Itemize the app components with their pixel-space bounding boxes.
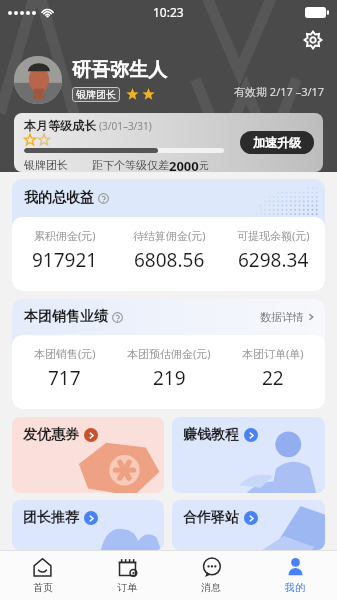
button[interactable]: 加速升级 [240,131,314,154]
button[interactable]: 发优惠券 [12,417,164,493]
button[interactable]: Profile avatar [14,56,62,104]
staticText: 717 [48,365,81,391]
staticText: 6808.56 [134,247,205,273]
staticText: 本团销售业绩 [24,308,108,326]
staticText: 加速升级 [253,135,301,150]
button[interactable]: 累积佣金(元) [12,228,117,273]
staticText: 本团订单(单) [242,346,304,361]
staticText: 我的 [285,581,305,594]
staticText: 首页 [33,581,53,594]
staticText: 可提现余额(元) [237,228,310,243]
button[interactable]: 首页 [0,551,85,600]
staticText: 消息 [201,581,221,594]
button[interactable]: 赚钱教程 [172,417,325,493]
staticText: 合作驿站 [183,509,239,527]
staticText: 917921 [32,247,98,273]
staticText: (3/01–3/31) [99,119,152,133]
button[interactable]: 本团预估佣金(元) [117,346,221,391]
button[interactable]: 本团订单(单) [221,346,325,391]
button[interactable]: 本团销售(元) [12,346,117,391]
staticText: 赚钱教程 [183,426,239,444]
staticText: 本月等级成长 [24,118,96,133]
staticText: 2000 [169,157,199,172]
staticText: 本团预估佣金(元) [127,346,211,361]
button[interactable]: 订单 [85,551,169,600]
staticText: 发优惠券 [23,426,79,444]
staticText: 待结算佣金(元) [133,228,206,243]
button[interactable]: 消息 [169,551,253,600]
button[interactable]: 数据详情 [260,310,325,324]
staticText: 219 [153,365,186,391]
staticText: 距下个等级仅差 [92,158,169,172]
staticText: 团长推荐 [23,509,79,527]
staticText: 银牌团长 [76,88,116,101]
button[interactable]: 团长推荐 [12,500,164,550]
button[interactable]: 我的 [253,551,337,600]
staticText: 6298.34 [238,247,309,273]
staticText: 研吾弥生人 [72,58,167,82]
staticText: 元 [199,159,209,172]
staticText: 银牌团长 [24,158,68,172]
staticText: 订单 [117,581,137,594]
staticText: 22 [262,365,284,391]
button[interactable]: 合作驿站 [172,500,325,550]
staticText: 有效期 2/17 –3/17 [234,84,325,99]
staticText: 我的总收益 [24,189,94,207]
staticText: 累积佣金(元) [34,228,96,243]
button[interactable]: 本月等级成长 [14,113,323,172]
staticText: 10:23 [153,4,184,20]
button[interactable]: 可提现余额(元) [221,228,325,273]
staticText: 本团销售(元) [34,346,96,361]
button[interactable]: 待结算佣金(元) [117,228,221,273]
staticText: 数据详情 [260,310,304,324]
button[interactable]: Settings [299,26,327,54]
